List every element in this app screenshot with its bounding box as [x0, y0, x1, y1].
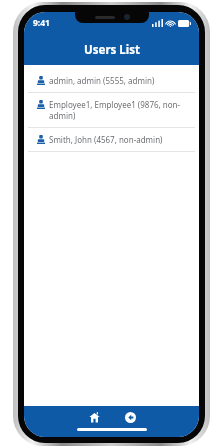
staticText: Smith, John (4567, non-admin)	[49, 134, 163, 145]
staticText: admin, admin (5555, admin)	[49, 75, 155, 86]
button[interactable]: Employee1, Employee1 (9876, non-admin)	[28, 93, 195, 128]
staticText: Employee1, Employee1 (9876, non-admin)	[49, 99, 187, 121]
button[interactable]: Back	[117, 406, 143, 428]
staticText: Users List	[84, 42, 140, 58]
button[interactable]: Smith, John (4567, non-admin)	[28, 128, 195, 151]
button[interactable]: admin, admin (5555, admin)	[28, 69, 195, 93]
button[interactable]: Home	[81, 406, 107, 428]
staticText: 9:41	[33, 17, 50, 29]
